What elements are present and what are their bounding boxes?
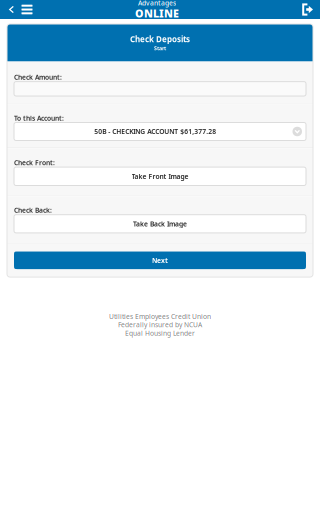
staticText: 50B - CHECKING ACCOUNT $61,377.28 <box>94 127 216 136</box>
button[interactable]: Log out <box>302 0 320 19</box>
staticText: Take Front Image <box>131 172 188 181</box>
button[interactable]: Next <box>14 251 306 269</box>
staticText: Start <box>154 44 166 52</box>
staticText: Check Front: <box>14 158 55 167</box>
staticText: Check Amount: <box>14 73 62 82</box>
staticText: Equal Housing Lender <box>125 329 195 338</box>
button[interactable]: Take Front Image <box>14 167 306 185</box>
staticText: Federally insured by NCUA <box>118 320 202 329</box>
staticText: Take Back Image <box>133 219 187 228</box>
button[interactable]: Take Back Image <box>14 215 306 233</box>
staticText: Utilities Employees Credit Union <box>109 312 211 321</box>
button[interactable]: Menu <box>19 0 35 19</box>
staticText: ONLINE <box>135 6 179 20</box>
button[interactable]: Back <box>0 0 19 19</box>
staticText: Next <box>152 256 168 265</box>
staticText: Check Back: <box>14 206 52 215</box>
staticText: Advantages <box>138 0 176 7</box>
button[interactable]: 50B - CHECKING ACCOUNT $61,377.28 <box>14 122 306 140</box>
staticText: To this Account: <box>14 114 64 122</box>
staticText: Check Deposits <box>130 34 190 44</box>
